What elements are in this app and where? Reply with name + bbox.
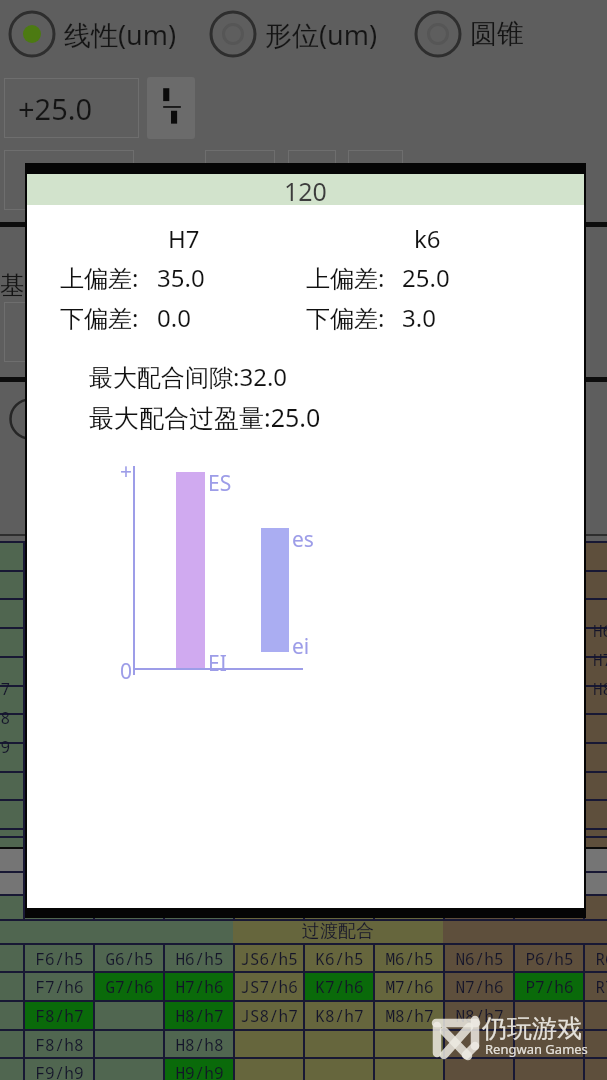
staticText: F9/h9 bbox=[35, 1062, 84, 1080]
button[interactable]: 线性(um) bbox=[8, 10, 177, 58]
staticText: JS6/h5 bbox=[240, 948, 298, 970]
button[interactable]: G6/h5 bbox=[95, 945, 163, 972]
staticText: G7/h6 bbox=[105, 976, 154, 998]
button[interactable]: N8/h7 bbox=[445, 1002, 513, 1029]
staticText: N8/h7 bbox=[455, 1005, 504, 1027]
staticText: 下偏差: bbox=[60, 301, 139, 334]
button[interactable]: h8 bbox=[0, 1031, 23, 1058]
staticText: JS7/h6 bbox=[240, 976, 298, 998]
staticText: 基孔制 bbox=[0, 270, 75, 301]
staticText: M7/h6 bbox=[385, 976, 434, 998]
staticText: G6/h5 bbox=[105, 948, 154, 970]
button[interactable]: 120 bbox=[27, 174, 584, 205]
staticText: JS8/h7 bbox=[240, 1005, 298, 1027]
staticText: 过渡配合 bbox=[302, 920, 374, 943]
staticText: F7/h6 bbox=[35, 976, 84, 998]
staticText: K6/h5 bbox=[315, 948, 364, 970]
button[interactable]: G7/h6 bbox=[95, 973, 163, 1000]
button[interactable]: F9/h9 bbox=[25, 1059, 93, 1080]
button[interactable]: 过渡配合 bbox=[233, 919, 443, 943]
staticText: e8 bbox=[0, 707, 11, 729]
button[interactable]: F8/h8 bbox=[25, 1031, 93, 1058]
button[interactable]: H7/h6 bbox=[165, 973, 233, 1000]
button[interactable] bbox=[348, 150, 403, 210]
staticText: R6/h5 bbox=[595, 948, 607, 970]
button[interactable]: N7/h6 bbox=[445, 973, 513, 1000]
staticText: H7 bbox=[593, 649, 607, 671]
staticText: Rengwan Games bbox=[485, 1040, 588, 1058]
button[interactable] bbox=[4, 302, 144, 362]
button[interactable]: M7/h6 bbox=[375, 973, 443, 1000]
button[interactable]: M8/h7 bbox=[375, 1002, 443, 1029]
button[interactable]: M6/h5 bbox=[375, 945, 443, 972]
button[interactable]: H8/h7 bbox=[165, 1002, 233, 1029]
button[interactable]: h5 bbox=[0, 945, 23, 972]
staticText: 仍玩游戏 bbox=[482, 1013, 582, 1044]
staticText: F6/h5 bbox=[35, 948, 84, 970]
staticText: H7/h6 bbox=[175, 976, 224, 998]
staticText: ei bbox=[292, 632, 310, 661]
button[interactable]: JS6/h5 bbox=[235, 945, 303, 972]
button[interactable]: K6/h5 bbox=[305, 945, 373, 972]
staticText: H6/h5 bbox=[175, 948, 224, 970]
staticText: H8/h8 bbox=[175, 1034, 224, 1056]
staticText: K8/h7 bbox=[315, 1005, 364, 1027]
staticText: 0 bbox=[120, 657, 133, 686]
button[interactable]: F8/h7 bbox=[25, 1002, 93, 1029]
staticText: H8 bbox=[593, 678, 607, 700]
button[interactable]: K7/h6 bbox=[305, 973, 373, 1000]
button[interactable]: R6/h5 bbox=[585, 945, 607, 972]
button[interactable]: F6/h5 bbox=[25, 945, 93, 972]
staticText: R7/h6 bbox=[595, 976, 607, 998]
button[interactable]: H8/h8 bbox=[165, 1031, 233, 1058]
staticText: +25.0 bbox=[18, 89, 93, 128]
staticText: N7/h6 bbox=[455, 976, 504, 998]
staticText: e7 bbox=[0, 678, 11, 700]
staticText: 上偏差: bbox=[306, 261, 385, 294]
button[interactable]: R7/h6 bbox=[585, 973, 607, 1000]
button[interactable]: F7/h6 bbox=[25, 973, 93, 1000]
staticText: 3.0 bbox=[402, 301, 436, 334]
staticText: H8/h7 bbox=[175, 1005, 224, 1027]
button[interactable]: K8/h7 bbox=[305, 1002, 373, 1029]
button[interactable]: P6/h5 bbox=[515, 945, 583, 972]
staticText: 上偏差: bbox=[60, 261, 139, 294]
button[interactable]: H9/h9 bbox=[165, 1059, 233, 1080]
staticText: 形位(um) bbox=[265, 16, 378, 53]
button[interactable]: P7/h6 bbox=[515, 973, 583, 1000]
staticText: es bbox=[292, 525, 314, 554]
staticText: 25.0 bbox=[402, 261, 450, 294]
button[interactable]: N6/h5 bbox=[445, 945, 513, 972]
button[interactable]: +25.0 bbox=[4, 78, 139, 138]
staticText: M6/h5 bbox=[385, 948, 434, 970]
staticText: H7 bbox=[168, 222, 200, 255]
button[interactable]: JS7/h6 bbox=[235, 973, 303, 1000]
staticText: F8/h7 bbox=[35, 1005, 84, 1027]
button[interactable]: Tolerance position bbox=[147, 77, 195, 139]
button[interactable] bbox=[205, 150, 275, 210]
staticText: H9/h9 bbox=[175, 1062, 224, 1080]
staticText: N6/h5 bbox=[455, 948, 504, 970]
staticText: e9 bbox=[0, 736, 11, 758]
staticText: P7/h6 bbox=[525, 976, 574, 998]
button[interactable]: 圆锥 bbox=[414, 10, 524, 58]
button[interactable] bbox=[288, 150, 336, 210]
staticText: 线性(um) bbox=[64, 16, 177, 53]
staticText: 0.0 bbox=[157, 301, 191, 334]
staticText: 35.0 bbox=[157, 261, 205, 294]
button[interactable]: 形位(um) bbox=[209, 10, 378, 58]
staticText: EI bbox=[208, 649, 227, 678]
staticText: K7/h6 bbox=[315, 976, 364, 998]
staticText: H6 bbox=[593, 620, 607, 642]
button[interactable]: JS8/h7 bbox=[235, 1002, 303, 1029]
staticText: + bbox=[120, 457, 133, 486]
button[interactable]: H6/h5 bbox=[165, 945, 233, 972]
staticText: P6/h5 bbox=[525, 948, 574, 970]
staticText: 最大配合过盈量:25.0 bbox=[89, 400, 321, 434]
staticText: M8/h7 bbox=[385, 1005, 434, 1027]
button[interactable] bbox=[4, 150, 134, 210]
staticText: F8/h8 bbox=[35, 1034, 84, 1056]
